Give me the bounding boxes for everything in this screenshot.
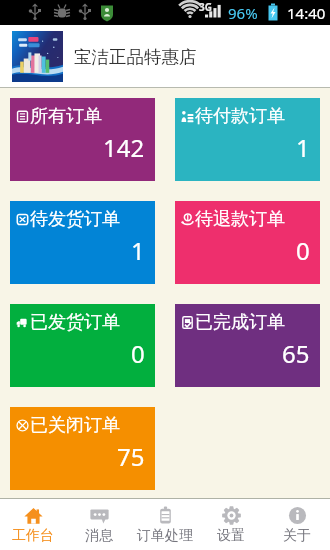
staticText: 待发货订单	[30, 208, 120, 231]
staticText: 待退款订单	[195, 208, 285, 231]
staticText: 待付款订单	[195, 105, 285, 128]
staticText: 已完成订单	[195, 311, 285, 334]
staticText: 0	[296, 234, 310, 267]
button[interactable]: 关于	[264, 499, 330, 550]
button[interactable]: 待付款订单	[175, 98, 320, 181]
staticText: 3G	[199, 0, 212, 14]
staticText: 14:40	[287, 3, 326, 23]
staticText: 1	[296, 131, 310, 164]
button[interactable]: 已关闭订单	[10, 407, 155, 490]
button[interactable]: 工作台	[0, 499, 66, 550]
staticText: 已发货订单	[30, 311, 120, 334]
staticText: 消息	[85, 527, 113, 545]
button[interactable]: 设置	[198, 499, 264, 550]
staticText: 75	[117, 440, 145, 473]
staticText: 设置	[217, 527, 245, 545]
staticText: 已关闭订单	[30, 414, 120, 437]
staticText: 所有订单	[30, 105, 102, 128]
button[interactable]: 消息	[66, 499, 132, 550]
button[interactable]: 待发货订单	[10, 201, 155, 284]
staticText: 0	[131, 337, 145, 370]
staticText: 1	[131, 234, 145, 267]
staticText: 工作台	[12, 527, 54, 545]
staticText: 65	[282, 337, 310, 370]
staticText: 订单处理	[137, 527, 193, 545]
button[interactable]: 所有订单	[10, 98, 155, 181]
button[interactable]: 订单处理	[132, 499, 198, 550]
button[interactable]: 待退款订单	[175, 201, 320, 284]
button[interactable]: 已完成订单	[175, 304, 320, 387]
staticText: 宝洁正品特惠店	[74, 46, 197, 68]
staticText: 关于	[283, 527, 311, 545]
staticText: 142	[103, 131, 145, 164]
staticText: 96%	[228, 3, 258, 23]
button[interactable]: 已发货订单	[10, 304, 155, 387]
